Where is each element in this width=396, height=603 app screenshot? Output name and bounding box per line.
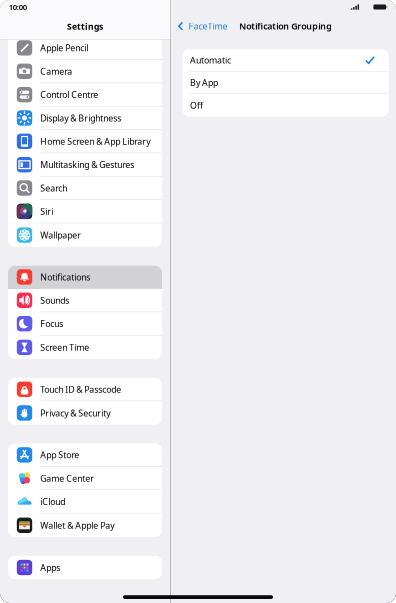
button[interactable]: Automatic [182,49,389,72]
staticText: Wallpaper [40,229,81,241]
staticText: Wallet & Apple Pay [40,519,114,531]
button[interactable]: Apple Pencil [8,37,162,60]
staticText: Off [190,99,203,111]
button[interactable]: Multitasking & Gestures [8,153,162,177]
staticText: Screen Time [40,341,89,353]
button[interactable]: Apps [8,556,162,579]
button[interactable]: Wallpaper [8,223,162,247]
staticText: iCloud [40,496,65,508]
staticText: Game Center [40,472,94,484]
button[interactable]: Wallet & Apple Pay [8,514,162,537]
staticText: Automatic [190,54,231,66]
button[interactable]: iCloud [8,490,162,514]
staticText: Notification Grouping [239,20,332,32]
button[interactable]: Siri [8,200,162,223]
staticText: Siri [40,205,53,217]
staticText: Display & Brightness [40,112,121,124]
button[interactable]: Screen Time [8,336,162,359]
staticText: App Store [40,449,79,461]
staticText: FaceTime [188,20,227,32]
button[interactable]: Touch ID & Passcode [8,378,162,401]
button[interactable]: Game Center [8,467,162,490]
staticText: Touch ID & Passcode [40,383,121,395]
staticText: Sounds [40,294,69,306]
staticText: Apps [40,561,60,573]
button[interactable]: Sounds [8,289,162,312]
staticText: Home Screen & App Library [40,135,150,147]
button[interactable]: Privacy & Security [8,401,162,425]
staticText: Multitasking & Gestures [40,159,134,171]
button[interactable]: Control Centre [8,83,162,107]
staticText: Settings [67,21,103,32]
button[interactable]: Notifications [8,266,162,289]
staticText: Search [40,182,67,194]
button[interactable]: Off [182,94,389,117]
button[interactable]: App Store [8,443,162,467]
staticText: Camera [40,65,72,77]
staticText: By App [190,77,218,89]
button[interactable]: Focus [8,312,162,336]
staticText: Notifications [40,271,90,283]
staticText: Privacy & Security [40,407,110,419]
button[interactable]: Search [8,177,162,200]
button[interactable]: By App [182,72,389,94]
button[interactable]: Display & Brightness [8,107,162,130]
staticText: Focus [40,318,63,330]
button[interactable]: Home Screen & App Library [8,130,162,153]
button[interactable]: FaceTime [171,20,227,32]
button[interactable]: Camera [8,60,162,83]
staticText: 10:00 [9,2,27,12]
staticText: Apple Pencil [40,42,88,54]
staticText: Control Centre [40,89,98,101]
